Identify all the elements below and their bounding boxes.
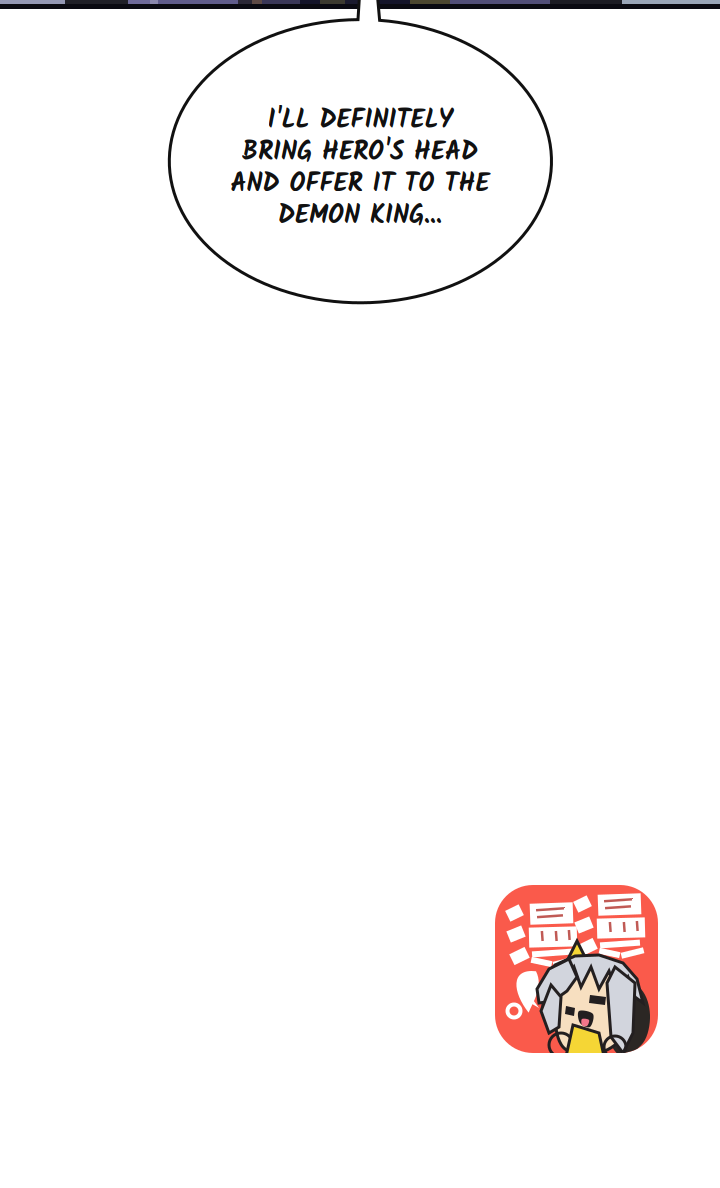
staticText: I'LL DEFINITELY	[267, 100, 452, 141]
staticText: BRING HERO'S HEAD	[242, 132, 478, 173]
staticText: DEMON KING...	[278, 196, 442, 237]
staticText: AND OFFER IT TO THE	[230, 164, 489, 205]
